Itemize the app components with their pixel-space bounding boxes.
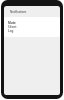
button[interactable]: Notifications	[4, 6, 60, 17]
button[interactable]: Mute	[4, 17, 60, 37]
staticText: Silent	[8, 25, 17, 29]
staticText: Mute	[8, 21, 16, 25]
staticText: Notifications	[10, 10, 27, 14]
staticText: Log	[8, 29, 14, 33]
